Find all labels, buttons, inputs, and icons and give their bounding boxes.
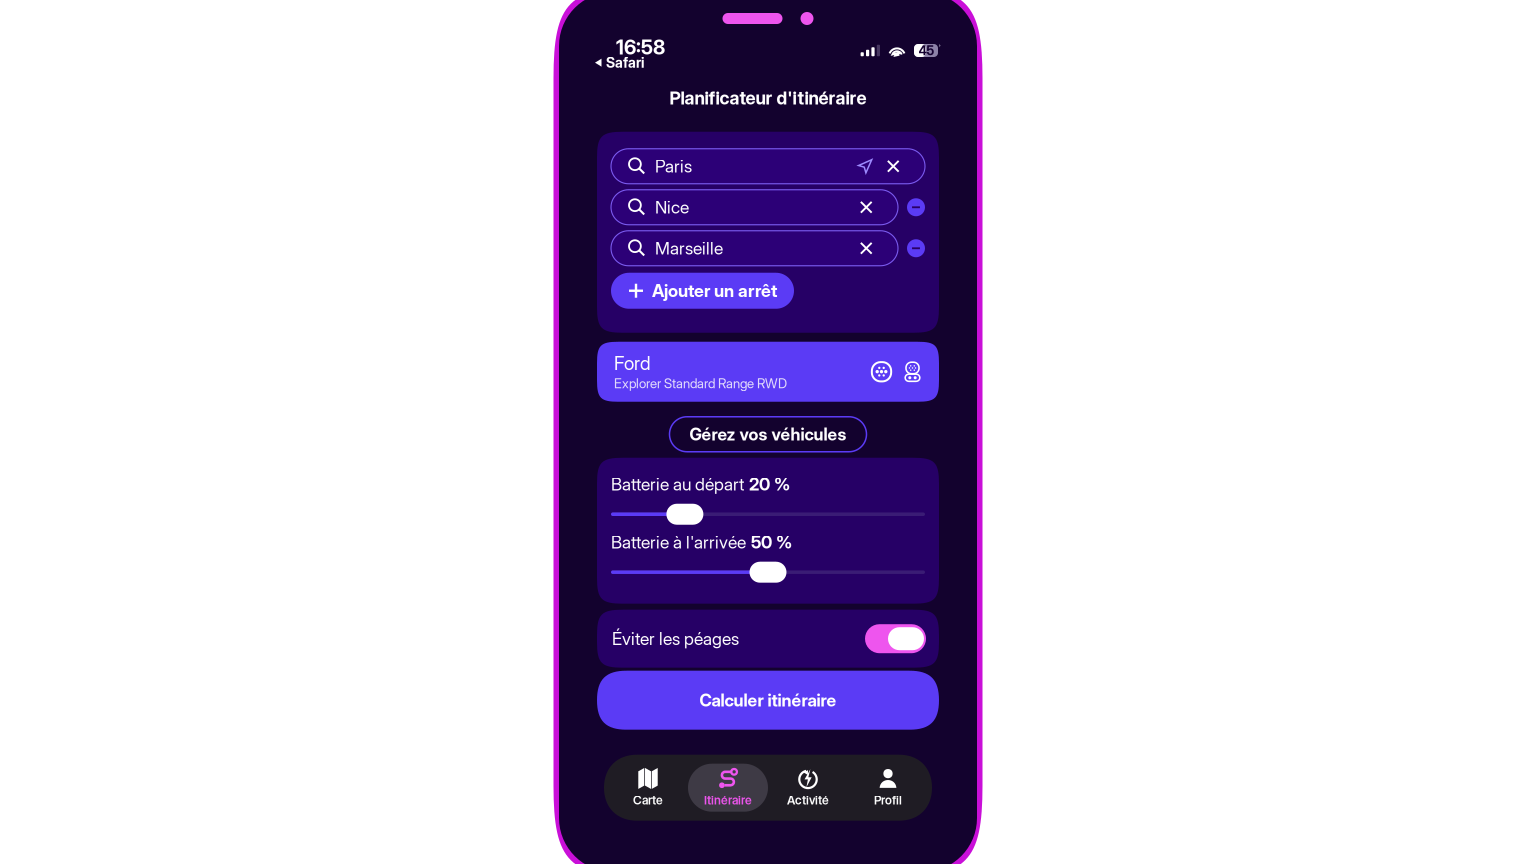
button[interactable]: Marseille: [611, 231, 898, 266]
staticText: Marseille: [655, 238, 723, 259]
staticText: Batterie au départ: [611, 474, 744, 495]
button[interactable]: Profil: [848, 764, 928, 812]
staticText: Ford: [614, 352, 651, 375]
button[interactable]: Ford: [597, 342, 939, 402]
staticText: Carte: [633, 793, 663, 807]
staticText: Activité: [787, 793, 829, 807]
staticText: 50 %: [751, 532, 792, 553]
staticText: Batterie à l'arrivée: [611, 532, 746, 553]
staticText: 45: [918, 43, 934, 58]
button[interactable]: Activité: [768, 764, 848, 812]
staticText: Safari: [606, 54, 644, 71]
staticText: 20 %: [749, 474, 790, 495]
staticText: Itinéraire: [704, 793, 752, 807]
staticText: Explorer Standard Range RWD: [614, 376, 787, 392]
staticText: Profil: [874, 793, 902, 807]
button[interactable]: Carte: [608, 764, 688, 812]
button[interactable]: Gérez vos véhicules: [669, 417, 866, 452]
staticText: 16:58: [616, 35, 665, 59]
button[interactable]: Éviter les péages: [865, 624, 926, 653]
staticText: Nice: [655, 197, 689, 218]
staticText: Éviter les péages: [612, 628, 739, 649]
staticText: Planificateur d'itinéraire: [669, 87, 866, 109]
button[interactable]: Nice: [611, 190, 898, 225]
staticText: Gérez vos véhicules: [689, 424, 846, 444]
staticText: Paris: [655, 156, 692, 177]
button[interactable]: Itinéraire: [688, 764, 768, 812]
button[interactable]: Paris: [611, 149, 925, 184]
staticText: Calculer itinéraire: [699, 690, 836, 710]
button[interactable]: Ajouter un arrêt: [611, 273, 794, 309]
staticText: Ajouter un arrêt: [652, 280, 777, 301]
button[interactable]: Calculer itinéraire: [597, 671, 939, 730]
